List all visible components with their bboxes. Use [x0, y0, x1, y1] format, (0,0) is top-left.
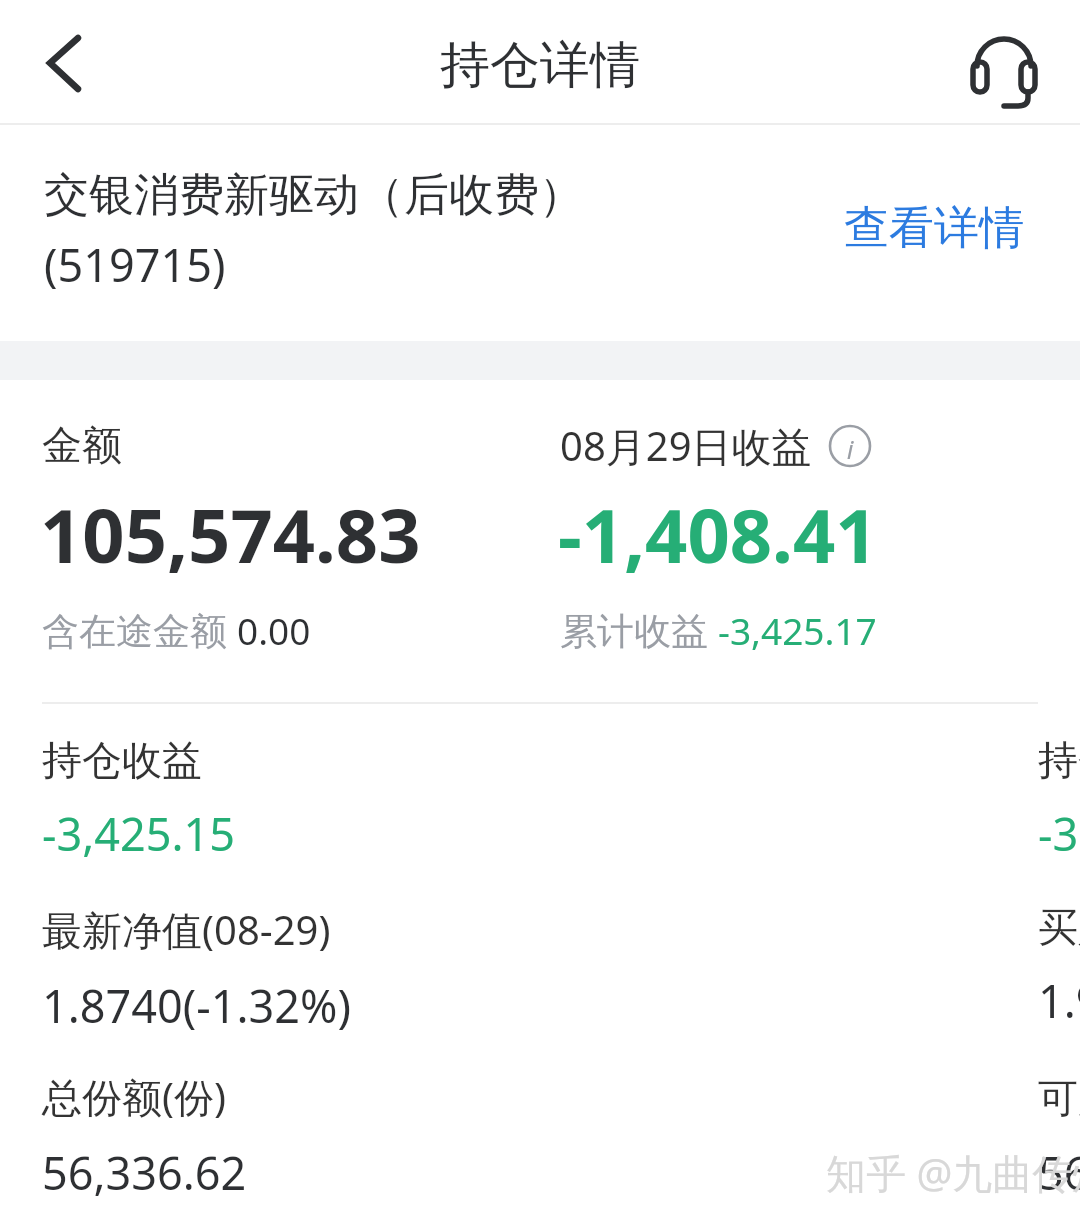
staticText: 买入成本价 — [1038, 902, 1080, 952]
staticText: 105,574.83 — [40, 484, 421, 585]
button[interactable]: 查看详情 — [838, 196, 1050, 261]
staticText: 查看详情 — [844, 200, 1024, 257]
staticText: 含在途金额 — [42, 604, 237, 655]
staticText: 交银消费新驱动（后收费） — [44, 167, 584, 224]
button[interactable]: 可用份额(份) — [1038, 1069, 1080, 1203]
staticText: 08月29日收益 — [560, 418, 812, 473]
button[interactable]: 08月29日收益 — [560, 418, 872, 473]
button[interactable]: 最新净值(08-29) — [42, 902, 522, 1036]
staticText: 持仓详情 — [0, 34, 1080, 97]
other: Info — [828, 424, 872, 468]
staticText: (519715) — [44, 234, 226, 295]
staticText: 累计收益 — [560, 604, 718, 655]
staticText: 56,336.62 — [1038, 1142, 1080, 1203]
staticText: -3,425.15 — [42, 803, 236, 864]
button[interactable]: Back — [8, 14, 104, 110]
staticText: 持仓收益率 — [1038, 735, 1080, 785]
staticText: i — [828, 431, 872, 466]
staticText: 1.8740(-1.32%) — [42, 975, 351, 1036]
button[interactable]: 买入成本价 — [1038, 902, 1080, 1031]
staticText: -3.14% — [1038, 803, 1080, 864]
staticText: 可用份额(份) — [1038, 1069, 1080, 1124]
staticText: 56,336.62 — [42, 1142, 247, 1203]
staticText: 知乎 @九曲传灯 — [826, 1145, 1080, 1200]
staticText: -1,408.41 — [558, 484, 878, 585]
button[interactable]: 持仓收益 — [42, 735, 522, 864]
staticText: 持仓收益 — [42, 735, 202, 785]
button[interactable]: 持仓收益率 — [1038, 735, 1080, 864]
staticText: -3,425.17 — [718, 605, 877, 655]
staticText: 最新净值(08-29) — [42, 902, 331, 957]
staticText: 1.934798 — [1038, 970, 1080, 1031]
staticText: 金额 — [42, 420, 122, 470]
button[interactable]: Customer service — [964, 22, 1044, 102]
button[interactable]: 总份额(份) — [42, 1069, 522, 1203]
staticText: 0.00 — [237, 605, 311, 655]
staticText: 总份额(份) — [42, 1069, 226, 1124]
